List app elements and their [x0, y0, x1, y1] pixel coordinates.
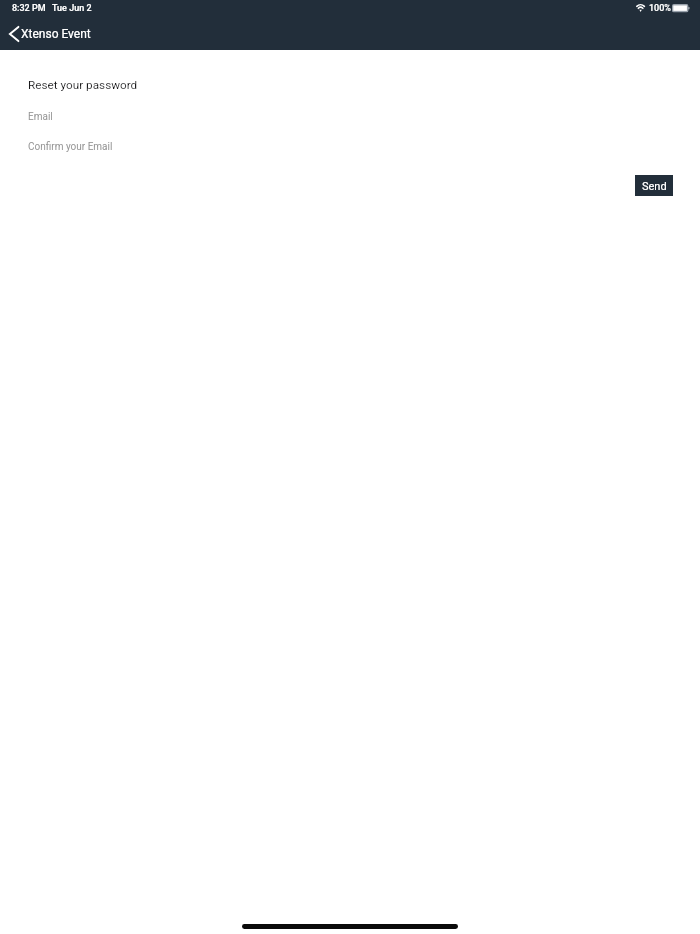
staticText: Tue Jun 2: [52, 3, 92, 14]
staticText: 8:32 PM: [12, 3, 46, 14]
button[interactable]: Back: [4, 22, 24, 46]
staticText: Send: [642, 180, 667, 193]
staticText: Email: [28, 111, 53, 123]
staticText: Confirm your Email: [28, 141, 113, 153]
staticText: Xtenso Event: [21, 27, 91, 41]
staticText: Reset your password: [28, 78, 138, 92]
button[interactable]: Send: [635, 175, 673, 196]
staticText: 100%: [649, 3, 671, 14]
button[interactable]: Confirm your Email: [20, 133, 680, 159]
button[interactable]: Email: [20, 103, 680, 129]
